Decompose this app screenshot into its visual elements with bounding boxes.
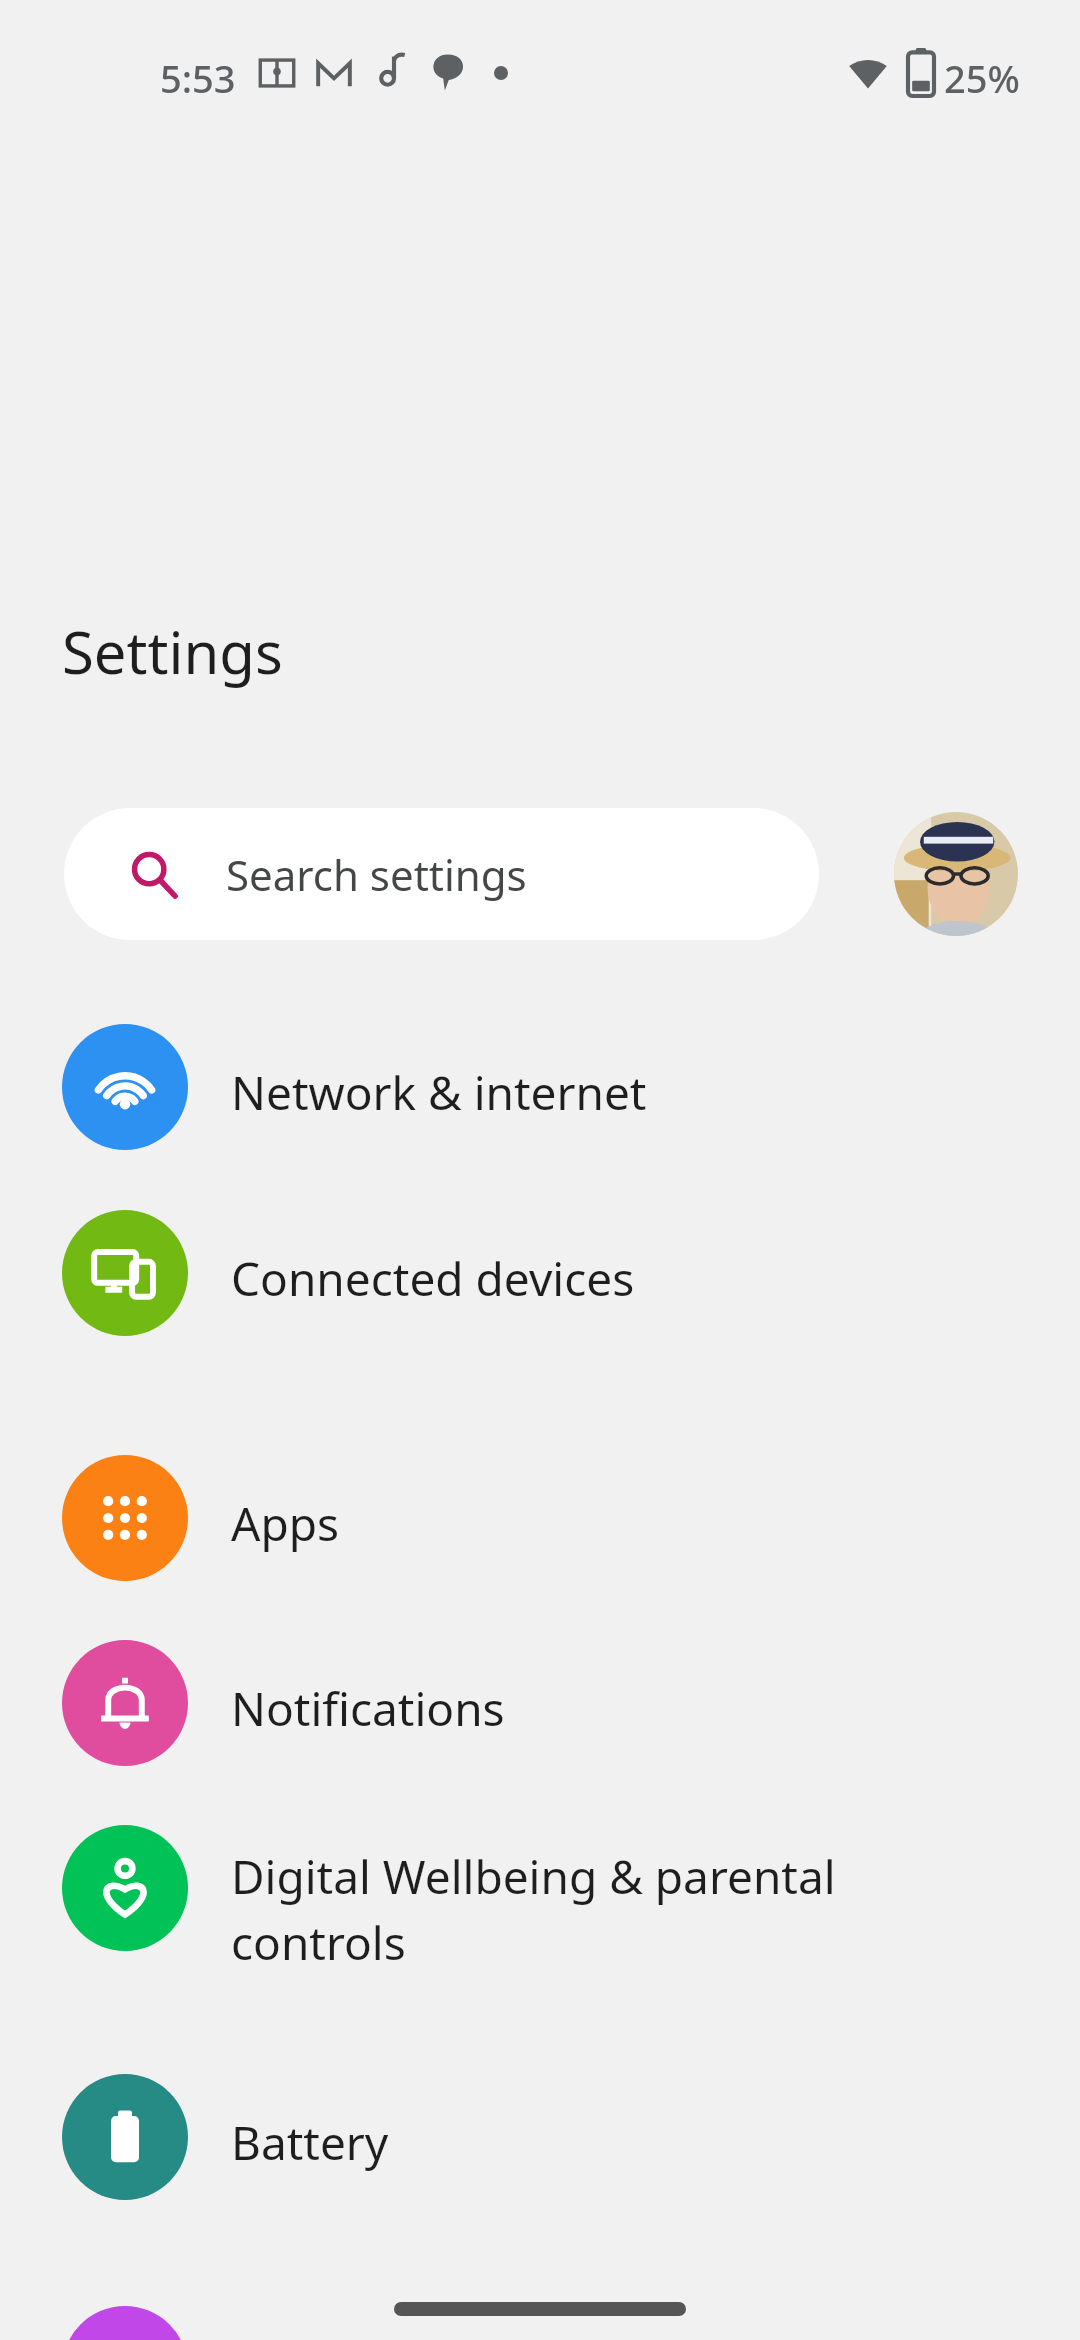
staticText: Notifications — [231, 1677, 505, 1740]
button[interactable] — [0, 2306, 1080, 2340]
staticText: Apps — [231, 1492, 340, 1555]
button[interactable]: Notifications — [0, 1640, 1080, 1766]
staticText: Battery — [231, 2111, 389, 2174]
button[interactable]: Search settings — [64, 808, 819, 940]
button[interactable]: Account avatar — [894, 812, 1018, 936]
button[interactable]: Digital Wellbeing & parental controls — [0, 1825, 1080, 1951]
button[interactable]: Network & internet — [0, 1024, 1080, 1150]
staticText: 5:53 — [160, 52, 236, 104]
staticText: Settings — [62, 612, 283, 691]
staticText: Search settings — [226, 846, 527, 903]
button[interactable]: Battery — [0, 2074, 1080, 2200]
staticText: Digital Wellbeing & parental controls — [231, 1845, 836, 1971]
staticText: Network & internet — [231, 1061, 647, 1124]
button[interactable]: Connected devices — [0, 1210, 1080, 1336]
staticText: Connected devices — [231, 1247, 635, 1310]
button[interactable]: Apps — [0, 1455, 1080, 1581]
staticText: 25% — [944, 52, 1020, 104]
